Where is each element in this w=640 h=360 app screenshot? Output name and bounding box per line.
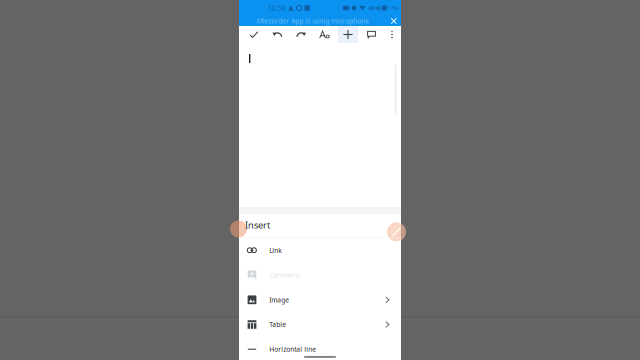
staticText: XRecorder App is using microphone xyxy=(256,17,369,25)
button[interactable]: Done xyxy=(244,26,264,43)
button[interactable]: Link xyxy=(239,238,401,263)
button[interactable]: Format text xyxy=(314,26,334,43)
staticText: 10:58 xyxy=(268,4,286,12)
staticText: Insert xyxy=(245,219,270,231)
staticText: Horizontal line xyxy=(269,345,316,354)
staticText: Comment xyxy=(269,271,299,280)
button[interactable]: Image xyxy=(239,287,401,312)
staticText: Table xyxy=(269,320,286,329)
button[interactable]: Dismiss microphone notice xyxy=(387,16,401,26)
staticText: Image xyxy=(269,295,289,304)
button[interactable]: Undo xyxy=(267,26,287,43)
button[interactable]: Table xyxy=(239,312,401,337)
staticText: Link xyxy=(269,246,282,255)
button[interactable]: More options xyxy=(385,26,399,43)
button[interactable]: Comment xyxy=(361,26,381,43)
staticText: 13% xyxy=(388,4,398,12)
button[interactable]: Insert xyxy=(338,26,358,43)
button[interactable]: Horizontal line xyxy=(239,337,401,360)
button[interactable]: Redo xyxy=(291,26,311,43)
button[interactable]: Comment xyxy=(239,263,401,287)
